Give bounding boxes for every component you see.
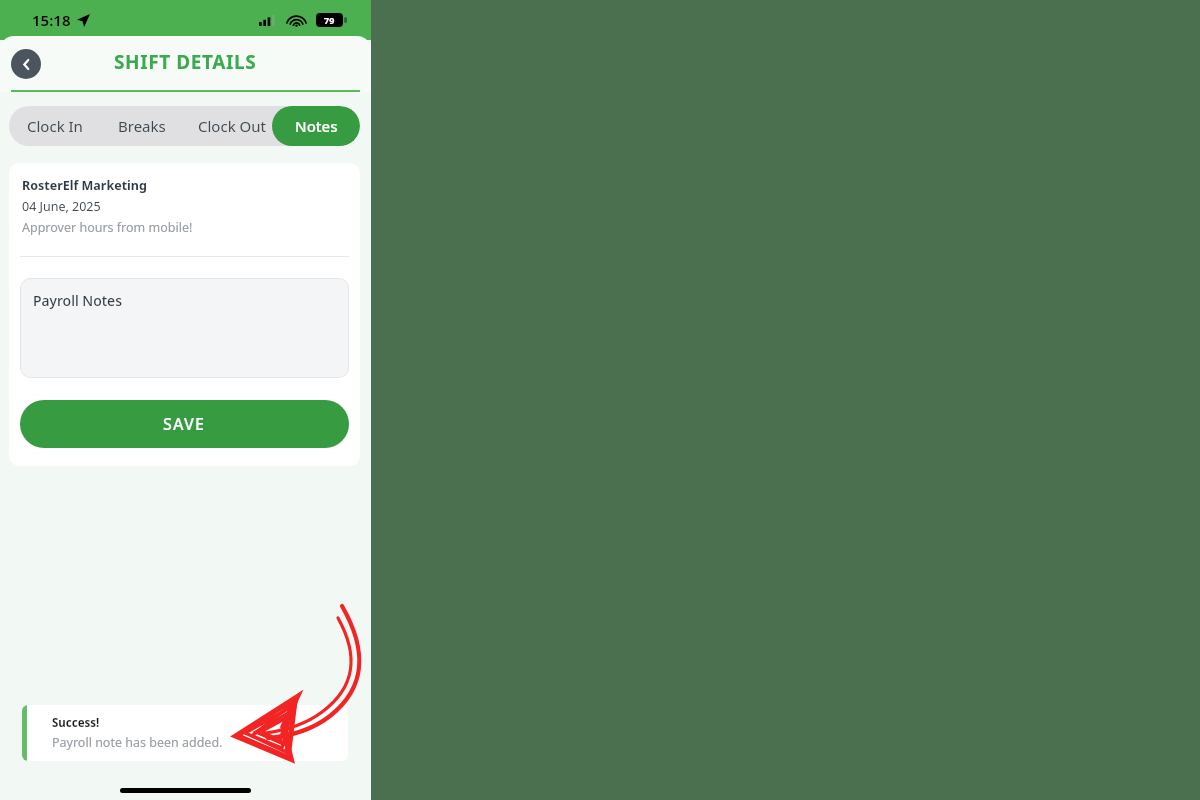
button[interactable]: Clock Out [184,106,280,146]
button[interactable]: Clock In [9,106,100,146]
staticText: 15:18 [32,10,71,30]
button[interactable]: Breaks [100,106,184,146]
staticText: SAVE [163,413,206,435]
staticText: Notes [295,116,338,136]
staticText: 04 June, 2025 [22,198,101,215]
staticText: Approver hours from mobile! [22,219,193,236]
staticText: 79 [324,14,335,26]
button[interactable]: Payroll Notes [20,278,349,378]
staticText: Success! [52,715,100,731]
staticText: RosterElf Marketing [22,177,147,194]
button[interactable]: SAVE [20,400,349,448]
button[interactable]: Success! [22,705,348,761]
staticText: Payroll Notes [33,291,122,310]
staticText: Payroll note has been added. [52,734,223,751]
staticText: Clock Out [198,116,266,136]
staticText: Clock In [27,116,83,136]
staticText: SHIFT DETAILS [114,49,257,75]
button[interactable]: Notes [272,106,360,146]
button[interactable]: Back [11,49,41,79]
staticText: Breaks [118,116,166,136]
